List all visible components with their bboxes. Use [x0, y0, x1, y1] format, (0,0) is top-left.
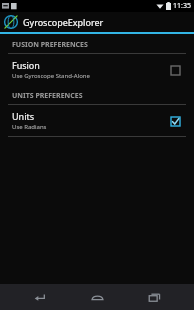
- button[interactable]: Checked: [166, 112, 184, 130]
- button[interactable]: Fusion: [0, 54, 194, 85]
- staticText: UNITS PREFERENCES: [12, 91, 83, 101]
- button[interactable]: Back: [23, 284, 57, 310]
- staticText: FUSION PREFERENCES: [12, 40, 88, 50]
- staticText: Fusion: [12, 59, 40, 71]
- staticText: Use Gyroscope Stand-Alone: [12, 72, 90, 80]
- staticText: Use Radians: [12, 123, 47, 131]
- button[interactable]: Recent apps: [137, 284, 171, 310]
- button[interactable]: Unchecked: [166, 61, 184, 79]
- staticText: 11:35: [173, 1, 191, 11]
- button[interactable]: Units: [0, 105, 194, 136]
- staticText: GyroscopeExplorer: [23, 16, 104, 28]
- button[interactable]: Home: [80, 284, 114, 310]
- staticText: Units: [12, 110, 35, 122]
